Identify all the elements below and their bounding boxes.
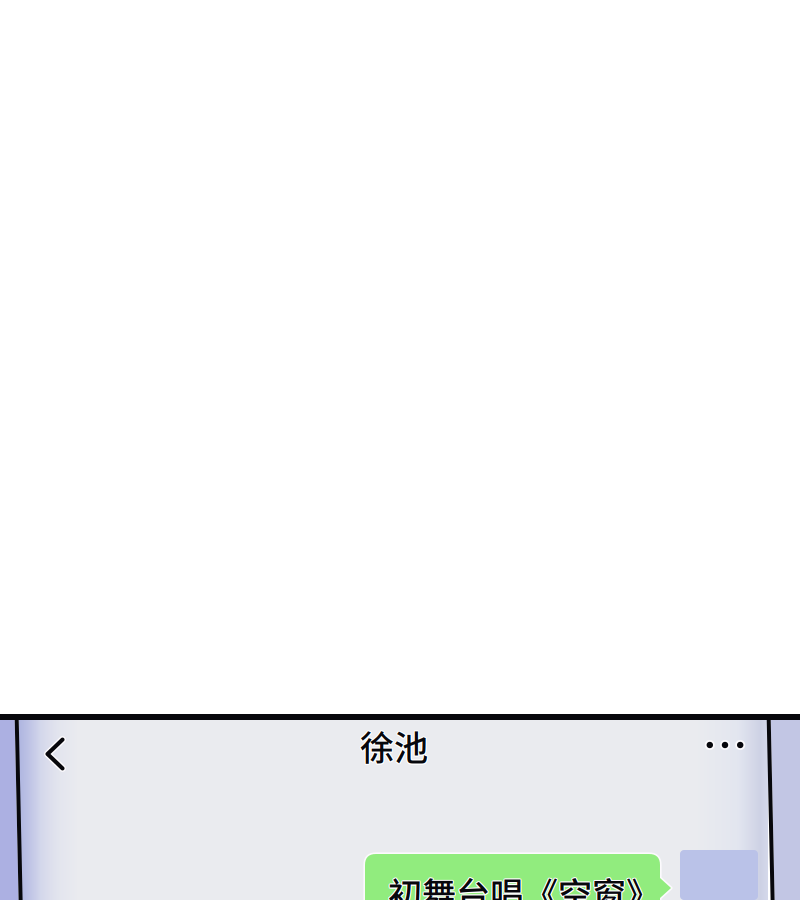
staticText: 初舞台唱《空窗》: [387, 867, 659, 900]
staticText: 初舞台唱《空窗》: [389, 869, 661, 900]
staticText: 徐池: [361, 720, 429, 770]
staticText: 初舞台唱《空窗》: [389, 868, 661, 900]
staticText: 初舞台唱《空窗》: [389, 867, 661, 900]
staticText: 徐池: [361, 722, 429, 771]
staticText: 徐池: [361, 721, 429, 770]
staticText: 初舞台唱《空窗》: [388, 869, 660, 900]
staticText: 徐池: [359, 721, 427, 770]
staticText: 徐池: [360, 722, 428, 771]
staticText: 徐池: [359, 722, 427, 771]
staticText: 徐池: [360, 721, 428, 770]
staticText: 初舞台唱《空窗》: [388, 867, 660, 900]
staticText: 初舞台唱《空窗》: [387, 868, 659, 900]
staticText: 初舞台唱《空窗》: [387, 869, 659, 900]
staticText: 徐池: [360, 720, 428, 769]
button[interactable]: More options: [697, 723, 753, 767]
button[interactable]: Back: [27, 726, 83, 782]
staticText: 徐池: [359, 720, 427, 770]
staticText: 初舞台唱《空窗》: [388, 868, 660, 900]
